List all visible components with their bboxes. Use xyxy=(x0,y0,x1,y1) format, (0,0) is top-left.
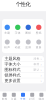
staticText: 标准 xyxy=(33,62,39,66)
button[interactable]: 推荐 xyxy=(0,93,9,100)
staticText: 浅色 xyxy=(33,57,39,60)
staticText: 主题 xyxy=(4,31,10,34)
button[interactable]: 更多 xyxy=(33,39,44,49)
staticText: 息屏 xyxy=(25,46,31,49)
button[interactable]: 我的 xyxy=(37,93,46,100)
staticText: › xyxy=(40,73,41,78)
staticText: 字体 xyxy=(15,31,21,34)
button[interactable]: 字体大小 xyxy=(2,61,44,67)
button[interactable]: 字体 xyxy=(12,25,23,34)
staticText: 推荐 xyxy=(2,97,8,100)
staticText: 图标 xyxy=(25,31,31,34)
staticText: 默认 xyxy=(33,68,39,71)
staticText: 更多设置 xyxy=(5,78,21,83)
staticText: 字体大小 xyxy=(5,62,21,67)
button[interactable]: 图标样式 xyxy=(2,67,44,73)
staticText: 壁纸 xyxy=(36,31,42,34)
staticText: 个性化 xyxy=(15,1,30,7)
staticText: 图标样式 xyxy=(5,67,21,72)
button[interactable]: 息屏 xyxy=(23,39,33,49)
staticText: 主题 xyxy=(11,97,17,100)
button[interactable]: 个性 xyxy=(18,93,28,100)
staticText: › xyxy=(40,67,41,72)
button[interactable]: 社区 xyxy=(28,93,37,100)
button[interactable]: 主题 xyxy=(9,93,18,100)
button[interactable]: 主题风格 xyxy=(2,56,44,61)
staticText: › xyxy=(40,56,41,61)
staticText: › xyxy=(40,61,41,67)
staticText: 更多 xyxy=(36,46,42,49)
button[interactable]: 图标 xyxy=(23,25,33,34)
staticText: 主题风格 xyxy=(5,56,21,61)
button[interactable]: 锁屏样式 xyxy=(2,73,44,78)
button[interactable]: 主题 xyxy=(2,25,12,34)
button[interactable]: 更多设置 xyxy=(2,78,44,83)
staticText: 锁屏样式 xyxy=(5,73,21,78)
staticText: 铃声 xyxy=(4,46,10,49)
staticText: 我的 xyxy=(38,97,44,100)
staticText: 个性 xyxy=(20,97,26,100)
button[interactable]: 动效 xyxy=(12,39,23,49)
button[interactable]: 铃声 xyxy=(2,39,12,49)
staticText: 社区 xyxy=(29,97,35,100)
staticText: 动效 xyxy=(15,46,21,49)
button[interactable]: 壁纸 xyxy=(33,25,44,34)
staticText: › xyxy=(40,78,41,83)
